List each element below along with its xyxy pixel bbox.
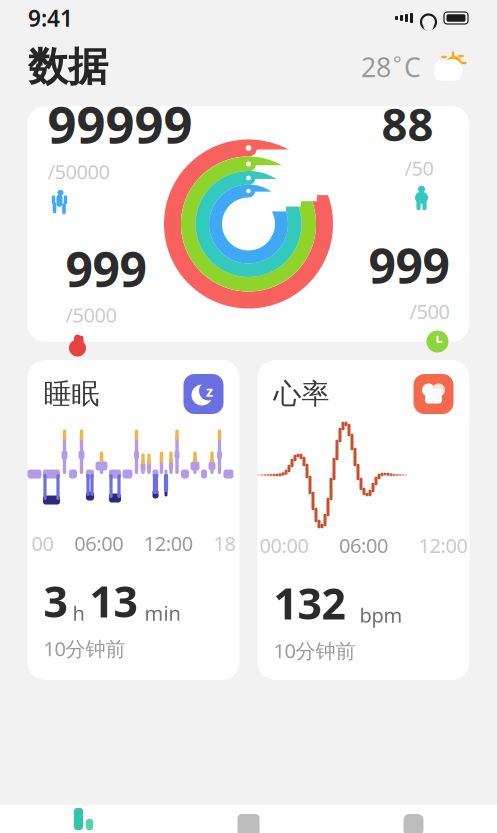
staticText: min <box>144 600 180 626</box>
staticText: ° <box>393 50 402 77</box>
staticText: 00:00 <box>259 532 308 559</box>
staticText: bpm <box>359 602 402 628</box>
staticText: C <box>404 49 421 85</box>
button[interactable]: Weather, 28 degrees Celsius <box>361 49 469 85</box>
button[interactable]: Discover <box>166 805 331 833</box>
staticText: 88 <box>381 93 433 154</box>
staticText: 132 <box>273 575 345 631</box>
staticText: /500 <box>409 298 449 325</box>
button[interactable]: Activity summary <box>27 106 469 342</box>
button[interactable]: Profile <box>331 805 496 833</box>
staticText: 999 <box>65 237 146 300</box>
staticText: 10分钟前 <box>273 637 355 664</box>
staticText: /50000 <box>47 158 109 185</box>
staticText: 10分钟前 <box>43 635 125 662</box>
staticText: 3 <box>43 573 67 629</box>
staticText: 13 <box>89 573 137 629</box>
staticText: 睡眠 <box>43 377 99 411</box>
button[interactable]: Sleep, 3 hours 13 minutes <box>27 360 239 680</box>
staticText: 06:00 <box>74 530 123 557</box>
staticText: z <box>206 381 213 401</box>
staticText: 18 <box>213 530 235 557</box>
staticText: 12:00 <box>144 530 193 557</box>
staticText: h <box>72 600 84 626</box>
staticText: 心率 <box>273 377 329 411</box>
staticText: /50 <box>404 155 433 181</box>
staticText: 9:41 <box>28 3 73 33</box>
staticText: 28 <box>361 49 391 85</box>
staticText: 99999 <box>47 90 192 157</box>
staticText: 12:00 <box>418 532 467 559</box>
button[interactable]: Heart rate, 132 bpm <box>257 360 469 680</box>
staticText: /5000 <box>65 301 116 328</box>
button[interactable]: Data <box>1 805 166 833</box>
staticText: 00 <box>31 530 53 557</box>
staticText: 999 <box>368 233 449 297</box>
staticText: 06:00 <box>339 532 388 559</box>
staticText: 数据 <box>28 42 108 91</box>
